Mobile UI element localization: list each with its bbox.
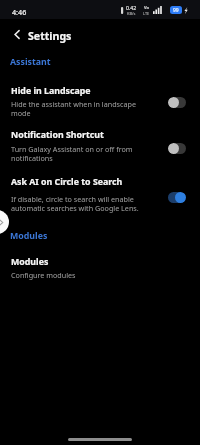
staticText: Modules (11, 256, 49, 268)
staticText: Assistant (10, 56, 51, 68)
staticText: Vo (144, 5, 149, 11)
button[interactable]: Edge panel handle (0, 210, 9, 234)
staticText: Modules (10, 230, 48, 242)
button[interactable]: Back (8, 26, 25, 43)
staticText: Hide in Landscape (11, 85, 91, 97)
staticText: 0.42 (126, 4, 137, 11)
staticText: 99 (173, 7, 179, 14)
button[interactable] (0, 125, 200, 169)
staticText: Ask AI on Circle to Search (11, 176, 123, 188)
staticText: Settings (28, 29, 72, 43)
staticText: Turn Galaxy Assistant on or off from not… (11, 144, 145, 163)
button[interactable]: On (168, 192, 186, 203)
staticText: LTE (143, 11, 150, 16)
staticText: If disable, circle to search will enable… (11, 194, 145, 213)
staticText: Configure modules (11, 270, 76, 280)
staticText: Notification Shortcut (11, 129, 104, 141)
button[interactable] (0, 172, 200, 216)
button[interactable]: Off (168, 97, 186, 108)
staticText: Hide the assistant when in landscape mod… (11, 99, 145, 118)
staticText: KB/s (127, 11, 136, 16)
button[interactable]: Off (168, 143, 186, 154)
staticText: 4:46 (12, 7, 27, 17)
button[interactable] (0, 81, 200, 125)
button[interactable]: Modules (0, 256, 200, 286)
